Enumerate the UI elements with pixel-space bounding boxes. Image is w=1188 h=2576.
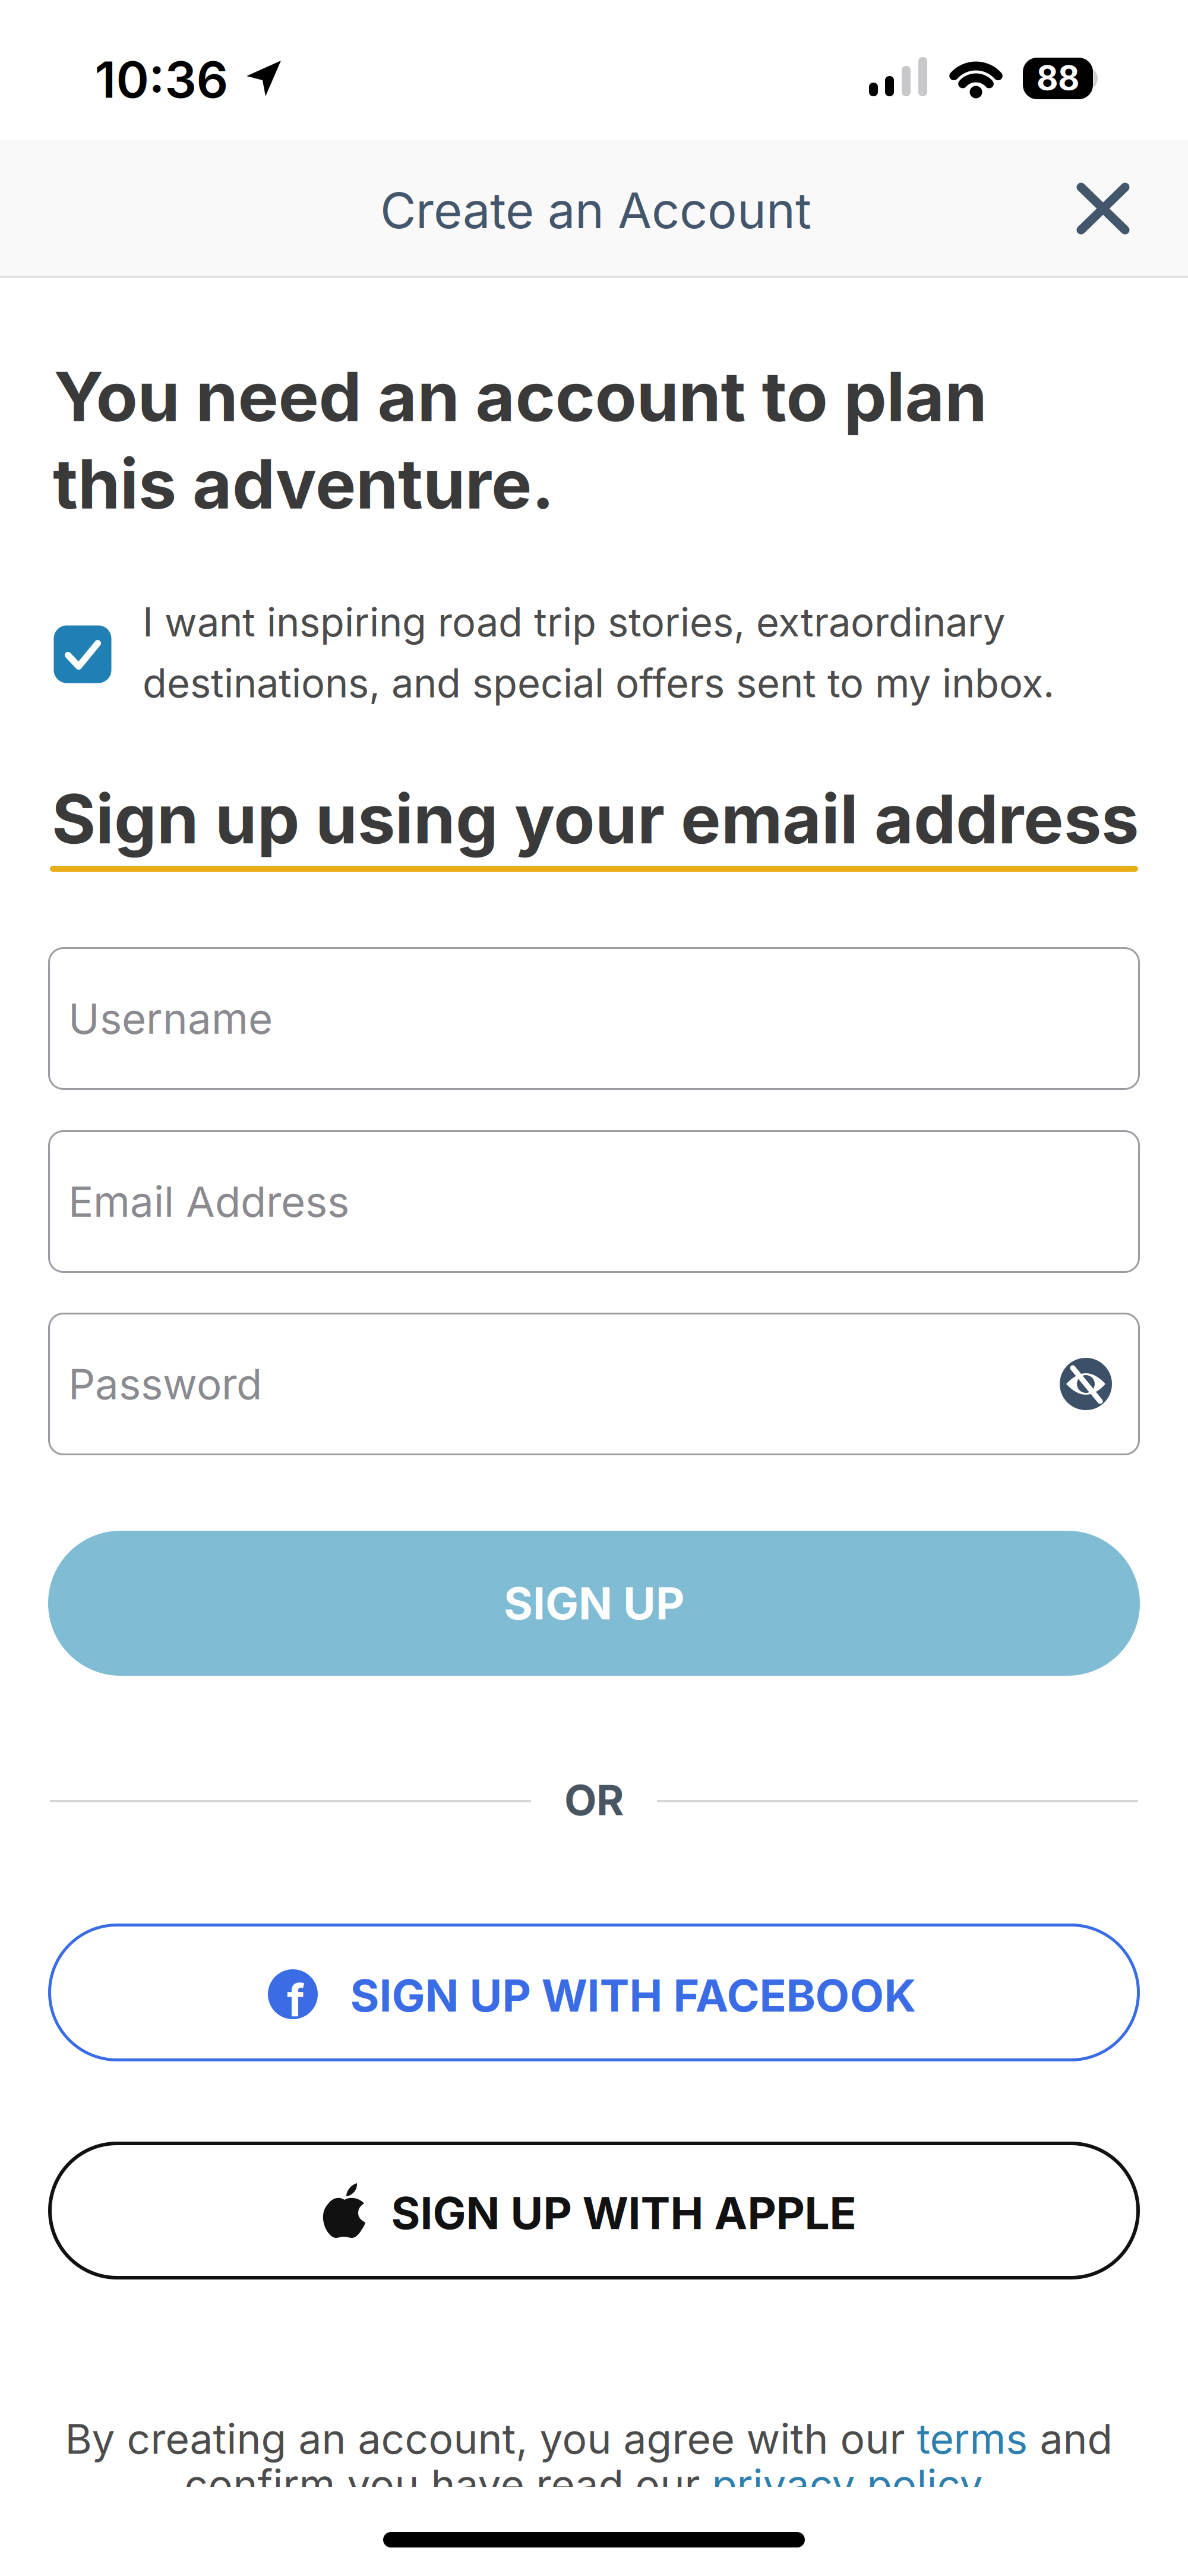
- staticText: You need an account to plan: [54, 356, 987, 437]
- button[interactable]: Close: [1080, 187, 1126, 231]
- staticText: OR: [564, 1775, 624, 1825]
- staticText: Sign up using your email address: [52, 779, 1139, 859]
- staticText: SIGN UP WITH APPLE: [391, 2187, 856, 2239]
- staticText: Password: [68, 1359, 262, 1409]
- staticText: and: [1028, 2414, 1112, 2463]
- staticText: this adventure.: [53, 444, 554, 524]
- staticText: terms: [917, 2414, 1028, 2463]
- button[interactable]: privacy policy.: [712, 2460, 993, 2509]
- staticText: confirm you have read our: [184, 2460, 712, 2509]
- staticText: Username: [68, 994, 273, 1043]
- staticText: Create an Account: [380, 181, 811, 239]
- button[interactable]: f: [48, 1924, 1140, 2061]
- staticText: By creating an account, you agree with o…: [65, 2414, 917, 2463]
- button[interactable]: Username: [48, 947, 1140, 1090]
- staticText: 10:36: [95, 50, 228, 109]
- button[interactable]: Password: [48, 1313, 1140, 1455]
- staticText: f: [287, 1974, 305, 2026]
- staticText: SIGN UP WITH FACEBOOK: [350, 1969, 916, 2022]
- staticText: 88: [1037, 58, 1079, 98]
- button[interactable]: terms: [917, 2414, 1028, 2463]
- button[interactable]: SIGN UP WITH APPLE: [48, 2142, 1140, 2279]
- button[interactable]: SIGN UP: [48, 1531, 1140, 1676]
- button[interactable]: I want inspiring road trip stories, extr…: [49, 589, 1148, 720]
- staticText: Email Address: [68, 1177, 349, 1226]
- button[interactable]: Email Address: [48, 1130, 1140, 1273]
- staticText: SIGN UP: [504, 1577, 684, 1629]
- button[interactable]: Show password: [1060, 1358, 1112, 1410]
- staticText: privacy policy.: [712, 2460, 993, 2509]
- staticText: I want inspiring road trip stories, extr…: [143, 599, 1054, 706]
